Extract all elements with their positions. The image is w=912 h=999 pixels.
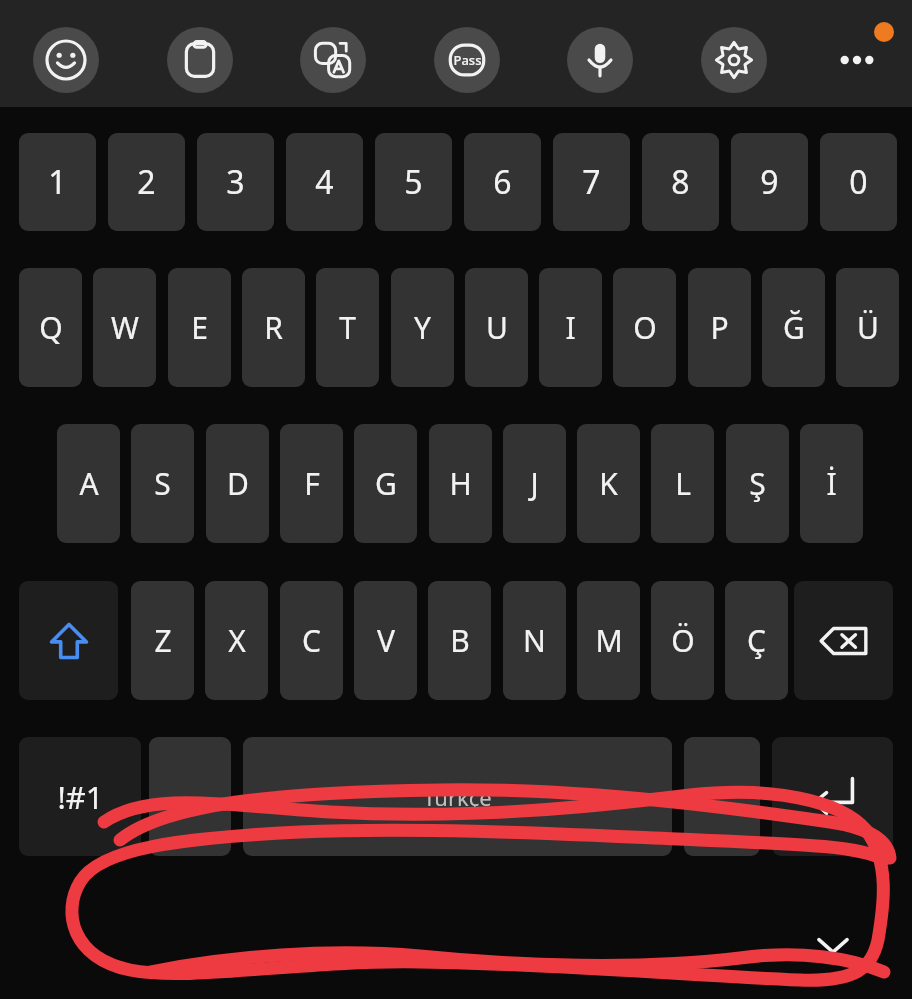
button[interactable]: Y bbox=[391, 268, 454, 387]
staticText: I bbox=[565, 307, 576, 348]
staticText: Ö bbox=[671, 620, 695, 661]
button[interactable]: Z bbox=[131, 581, 194, 700]
button[interactable] bbox=[19, 581, 118, 700]
staticText: T bbox=[339, 307, 356, 348]
button[interactable]: E bbox=[168, 268, 231, 387]
button[interactable]: K bbox=[577, 424, 640, 543]
staticText: Y bbox=[414, 307, 431, 348]
button[interactable]: 6 bbox=[464, 133, 541, 231]
button[interactable]: 5 bbox=[375, 133, 452, 231]
staticText: V bbox=[377, 620, 395, 661]
staticText: M bbox=[595, 620, 623, 661]
staticText: İ bbox=[826, 463, 837, 504]
staticText: W bbox=[111, 307, 139, 348]
button[interactable]: G bbox=[354, 424, 417, 543]
button[interactable]: H bbox=[429, 424, 492, 543]
button[interactable]: 8 bbox=[642, 133, 719, 231]
staticText: E bbox=[191, 307, 208, 348]
button[interactable]: !#1 bbox=[19, 737, 141, 856]
button[interactable]: Hide keyboard bbox=[793, 905, 873, 985]
button[interactable]: Clipboard bbox=[167, 27, 233, 93]
button[interactable]: J bbox=[503, 424, 566, 543]
button[interactable]: D bbox=[206, 424, 269, 543]
staticText: 8 bbox=[671, 160, 690, 204]
staticText: X bbox=[228, 620, 246, 661]
button[interactable]: N bbox=[503, 581, 566, 700]
button[interactable]: Settings bbox=[701, 27, 767, 93]
button[interactable]: X bbox=[205, 581, 268, 700]
button[interactable]: F bbox=[280, 424, 343, 543]
staticText: O bbox=[633, 307, 657, 348]
button[interactable]: B bbox=[428, 581, 491, 700]
staticText: Ğ bbox=[783, 307, 805, 348]
button[interactable]: 7 bbox=[553, 133, 630, 231]
button[interactable]: R bbox=[242, 268, 305, 387]
staticText: !#1 bbox=[57, 776, 104, 818]
button[interactable]: Ş bbox=[726, 424, 789, 543]
staticText: Ç bbox=[747, 620, 766, 661]
button[interactable]: 3 bbox=[197, 133, 274, 231]
staticText: 5 bbox=[404, 160, 423, 204]
button[interactable]: 1 bbox=[19, 133, 96, 231]
button[interactable]: L bbox=[651, 424, 714, 543]
staticText: 7 bbox=[582, 160, 601, 204]
button[interactable]: S bbox=[131, 424, 194, 543]
button[interactable]: P bbox=[688, 268, 751, 387]
button[interactable]: 4 bbox=[286, 133, 363, 231]
button[interactable]: W bbox=[93, 268, 156, 387]
staticText: Pass bbox=[453, 51, 482, 69]
button[interactable]: Ğ bbox=[762, 268, 825, 387]
staticText: K bbox=[599, 463, 618, 504]
button[interactable]: Voice input bbox=[567, 27, 633, 93]
staticText: Ş bbox=[749, 463, 766, 504]
staticText: S bbox=[154, 463, 171, 504]
button[interactable]: 0 bbox=[820, 133, 897, 231]
button[interactable]: C bbox=[280, 581, 343, 700]
staticText: 1 bbox=[48, 160, 67, 204]
staticText: Z bbox=[154, 620, 172, 661]
button[interactable]: Ö bbox=[651, 581, 714, 700]
staticText: 4 bbox=[315, 160, 334, 204]
staticText: 2 bbox=[137, 160, 156, 204]
button[interactable]: Ç bbox=[725, 581, 788, 700]
button[interactable] bbox=[772, 737, 893, 856]
staticText: L bbox=[675, 463, 691, 504]
staticText: G bbox=[375, 463, 397, 504]
button[interactable]: Türkçe bbox=[243, 737, 672, 856]
button[interactable] bbox=[794, 581, 893, 700]
staticText: R bbox=[264, 307, 283, 348]
button[interactable]: 2 bbox=[108, 133, 185, 231]
staticText: P bbox=[710, 307, 729, 348]
button[interactable]: I bbox=[539, 268, 602, 387]
staticText: 9 bbox=[760, 160, 779, 204]
staticText: 6 bbox=[493, 160, 512, 204]
staticText: . bbox=[718, 776, 727, 817]
button[interactable]: Q bbox=[19, 268, 82, 387]
button[interactable]: Emoji bbox=[33, 27, 99, 93]
button[interactable]: M bbox=[577, 581, 640, 700]
staticText: Türkçe bbox=[423, 782, 492, 812]
staticText: F bbox=[304, 463, 320, 504]
staticText: Q bbox=[39, 307, 63, 348]
staticText: A bbox=[79, 463, 99, 504]
button[interactable]: Ü bbox=[836, 268, 899, 387]
button[interactable]: U bbox=[465, 268, 528, 387]
button[interactable]: İ bbox=[800, 424, 863, 543]
staticText: D bbox=[227, 463, 249, 504]
staticText: , bbox=[186, 776, 195, 817]
staticText: J bbox=[530, 463, 539, 504]
staticText: Ü bbox=[857, 307, 879, 348]
staticText: B bbox=[450, 620, 470, 661]
button[interactable]: O bbox=[613, 268, 676, 387]
button[interactable]: , bbox=[149, 737, 231, 856]
button[interactable]: A bbox=[57, 424, 120, 543]
button[interactable]: T bbox=[316, 268, 379, 387]
button[interactable]: V bbox=[354, 581, 417, 700]
staticText: H bbox=[449, 463, 472, 504]
button[interactable]: . bbox=[684, 737, 760, 856]
button[interactable]: More options bbox=[824, 27, 890, 93]
button[interactable]: 9 bbox=[731, 133, 808, 231]
button[interactable]: Passwords bbox=[434, 27, 500, 93]
staticText: U bbox=[486, 307, 508, 348]
button[interactable]: Translate bbox=[300, 27, 366, 93]
